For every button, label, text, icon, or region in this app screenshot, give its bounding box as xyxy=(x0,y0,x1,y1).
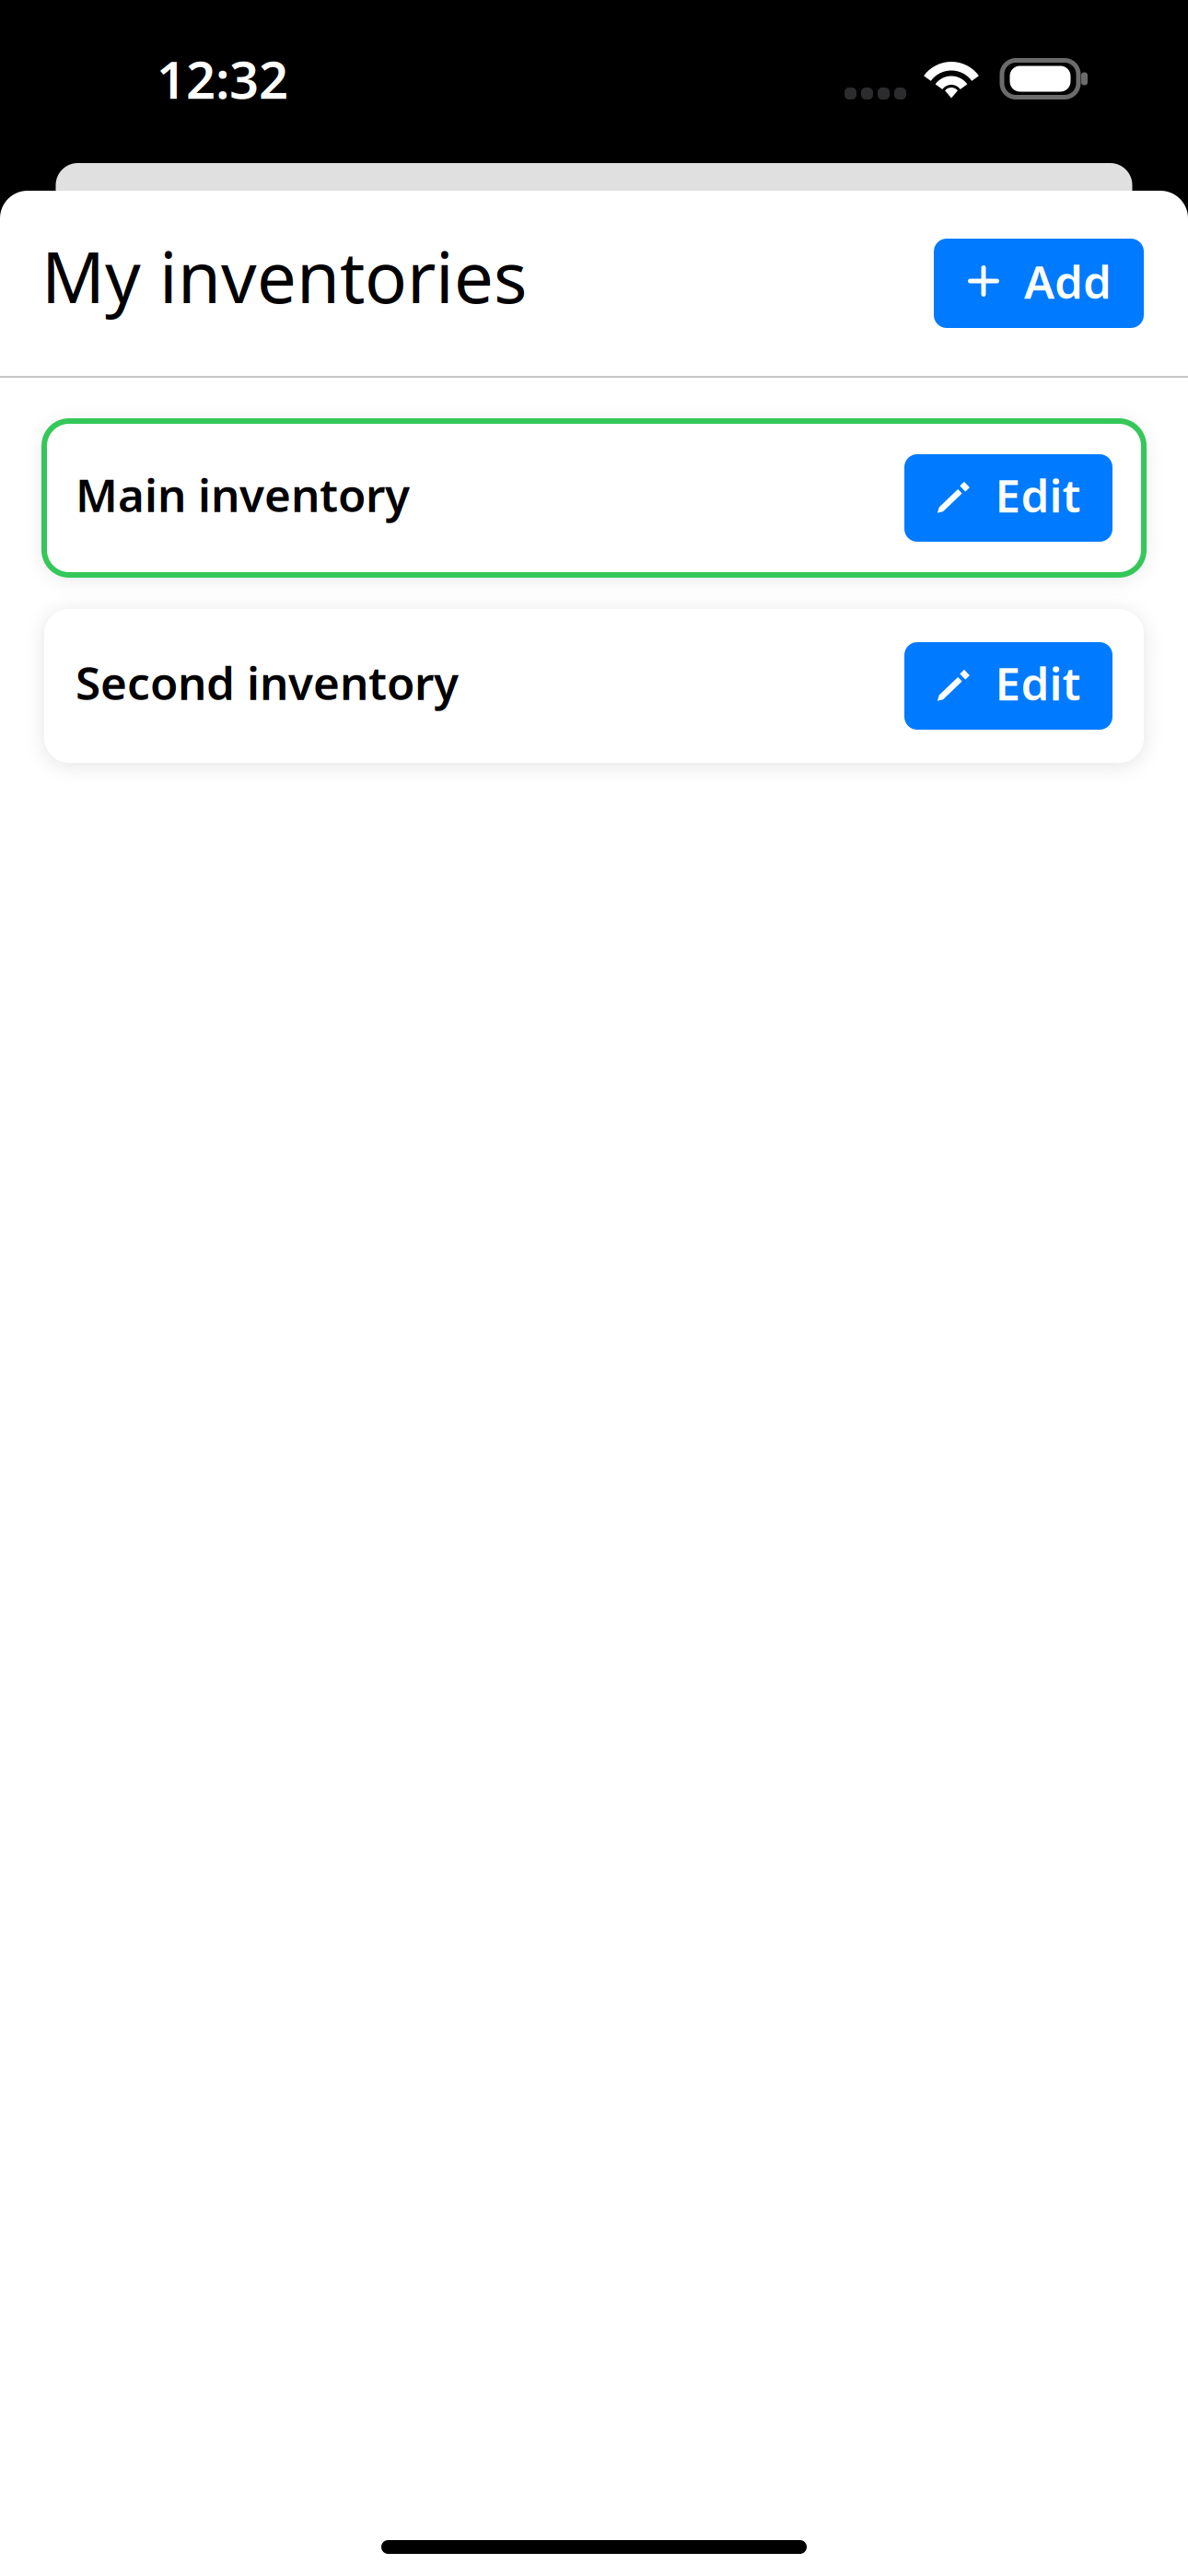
staticText: Second inventory xyxy=(76,652,459,712)
staticText: Edit xyxy=(995,652,1081,713)
button[interactable]: Add xyxy=(934,239,1144,328)
staticText: Edit xyxy=(995,465,1081,525)
button[interactable]: Edit xyxy=(904,642,1112,730)
staticText: Main inventory xyxy=(76,464,410,524)
staticText: My inventories xyxy=(41,229,527,322)
staticText: 12:32 xyxy=(157,44,288,113)
staticText: Add xyxy=(1024,251,1112,311)
button[interactable]: Second inventory xyxy=(44,609,1144,763)
button[interactable]: Main inventory xyxy=(44,421,1144,575)
button[interactable]: Edit xyxy=(904,454,1112,542)
